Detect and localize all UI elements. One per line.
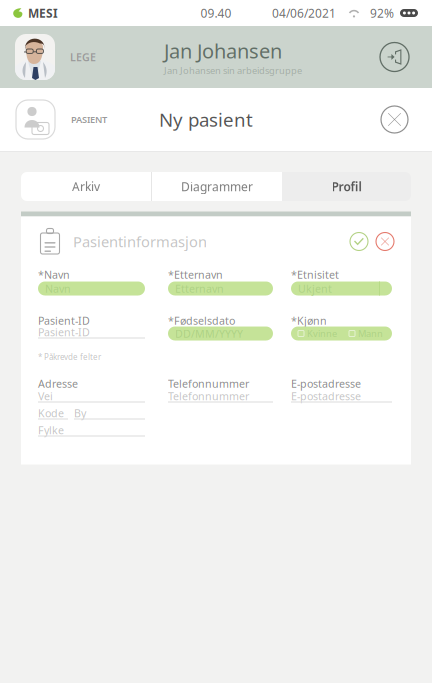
staticText: Kvinne: [307, 327, 337, 340]
staticText: Jan Johansen sin arbeidsgruppe: [164, 64, 302, 76]
staticText: 09.40: [200, 5, 231, 21]
staticText: DD/MM/YYYY: [175, 326, 243, 341]
staticText: Adresse: [38, 376, 78, 391]
staticText: Ukjent: [298, 281, 332, 296]
staticText: * Påkrevde felter: [38, 351, 101, 362]
staticText: Profil: [331, 178, 361, 194]
staticText: PASIENT: [71, 113, 107, 126]
staticText: Arkiv: [72, 178, 100, 194]
staticText: Ny pasient: [159, 107, 253, 132]
staticText: E-postadresse: [291, 389, 361, 403]
staticText: Kode: [38, 406, 64, 420]
staticText: By: [74, 406, 86, 420]
button[interactable]: Lagre: [346, 228, 372, 254]
staticText: Pasient-ID: [38, 325, 90, 339]
staticText: *Etternavn: [168, 267, 223, 282]
button[interactable]: Logg ut: [374, 36, 415, 77]
staticText: Diagrammer: [181, 178, 253, 194]
staticText: Telefonnummer: [168, 389, 249, 403]
staticText: Pasientinformasjon: [73, 232, 207, 251]
staticText: Jan Johansen: [164, 37, 282, 64]
staticText: E-postadresse: [291, 376, 361, 391]
staticText: 92%: [370, 5, 394, 21]
staticText: *Etnisitet: [291, 267, 339, 282]
staticText: *Kjønn: [291, 313, 327, 328]
staticText: Vei: [38, 389, 53, 403]
staticText: Etternavn: [175, 281, 224, 296]
button[interactable]: Profil: [282, 172, 411, 201]
button[interactable]: Avbryt: [372, 228, 398, 254]
staticText: MESI: [28, 5, 58, 21]
staticText: Fylke: [38, 423, 64, 437]
staticText: Navn: [45, 281, 71, 296]
staticText: Telefonnummer: [168, 376, 249, 391]
button[interactable]: Arkiv: [21, 172, 151, 201]
staticText: Mann: [358, 327, 383, 340]
staticText: *Fødselsdato: [168, 313, 235, 328]
staticText: 04/06/2021: [272, 5, 336, 21]
staticText: Pasient-ID: [38, 313, 90, 328]
staticText: *Navn: [38, 267, 70, 282]
button[interactable]: Diagrammer: [152, 172, 282, 201]
staticText: LEGE: [70, 50, 96, 64]
button[interactable]: Lukk: [375, 100, 414, 139]
